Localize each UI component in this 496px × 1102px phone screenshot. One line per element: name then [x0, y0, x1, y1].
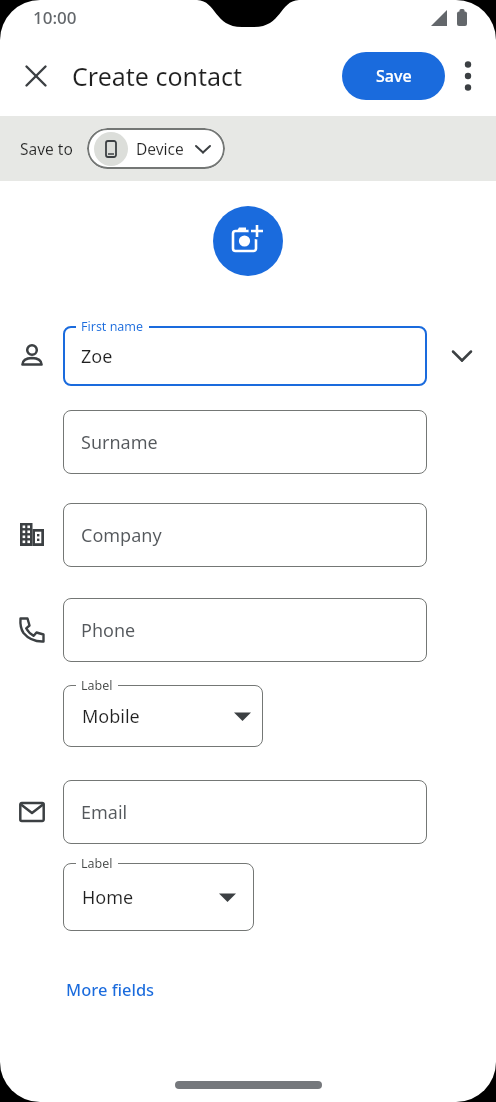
button[interactable]: Phone	[63, 598, 427, 662]
button[interactable]: Device	[87, 128, 225, 169]
button[interactable]: Home	[63, 863, 254, 931]
staticText: Home	[82, 885, 134, 910]
button[interactable]: More fields	[66, 978, 155, 1000]
staticText: 10:00	[33, 6, 77, 29]
staticText: Save to	[20, 138, 73, 159]
button[interactable]	[25, 65, 47, 87]
staticText: Label	[81, 677, 113, 694]
button[interactable]: Mobile	[63, 685, 263, 747]
staticText: Mobile	[82, 704, 140, 729]
button[interactable]: Save	[342, 52, 445, 100]
staticText: Email	[81, 800, 128, 825]
button[interactable]	[213, 206, 283, 276]
staticText: Save	[376, 65, 412, 87]
button[interactable]: Company	[63, 503, 427, 567]
button[interactable]: Email	[63, 780, 427, 844]
staticText: Phone	[81, 618, 136, 643]
button[interactable]: Zoe	[63, 326, 427, 386]
button[interactable]	[442, 336, 482, 376]
staticText: Label	[81, 855, 113, 872]
staticText: Create contact	[72, 59, 243, 93]
staticText: Surname	[81, 430, 158, 455]
staticText: Company	[81, 523, 162, 548]
staticText: Device	[136, 138, 184, 159]
staticText: Zoe	[81, 344, 113, 369]
button[interactable]: Surname	[63, 410, 427, 474]
staticText: First name	[81, 318, 144, 335]
button[interactable]	[448, 56, 488, 96]
